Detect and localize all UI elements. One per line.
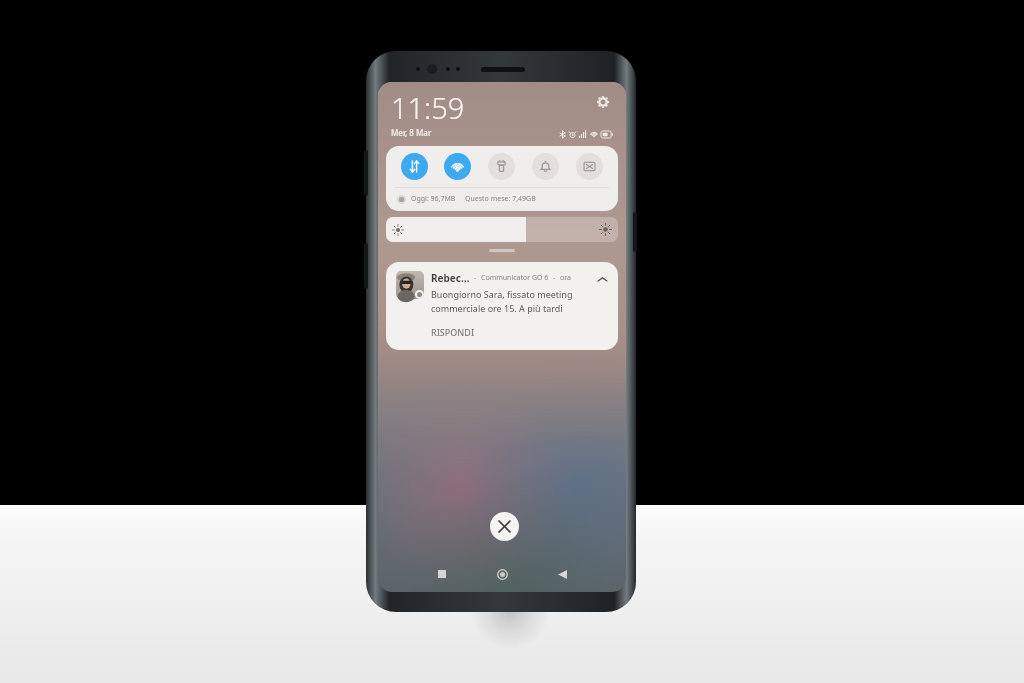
staticText: Rebec… — [431, 271, 470, 285]
button[interactable]: Home — [472, 559, 532, 589]
staticText: · — [553, 273, 556, 284]
staticText: RISPONDI — [431, 326, 475, 338]
staticText: Oggi: 96,7MB — [411, 194, 456, 204]
button[interactable]: Rebec… — [386, 262, 618, 350]
button[interactable]: Collapse — [594, 271, 610, 287]
button[interactable] — [393, 153, 436, 180]
staticText: Mer, 8 Mar — [391, 127, 432, 138]
button[interactable]: RISPONDI — [396, 325, 481, 339]
button[interactable] — [523, 153, 567, 180]
staticText: 11:59 — [391, 88, 465, 127]
staticText: Communicator GO 6 — [481, 273, 549, 283]
button[interactable] — [386, 217, 618, 242]
button[interactable]: Recents — [412, 559, 472, 589]
button[interactable]: Oggi: 96,7MB — [397, 194, 607, 204]
button[interactable]: Back — [532, 559, 592, 589]
button[interactable] — [479, 153, 523, 180]
staticText: Buongiorno Sara, fissato meeting — [431, 288, 573, 300]
staticText: ora — [560, 273, 571, 283]
button[interactable] — [436, 153, 479, 180]
button[interactable]: Settings — [593, 92, 613, 112]
staticText: Questo mese: 7,49GB — [465, 194, 536, 204]
staticText: commerciale ore 15. A più tardi — [431, 302, 563, 314]
staticText: · — [474, 273, 477, 284]
button[interactable] — [567, 153, 611, 180]
button[interactable]: Close — [490, 512, 519, 541]
